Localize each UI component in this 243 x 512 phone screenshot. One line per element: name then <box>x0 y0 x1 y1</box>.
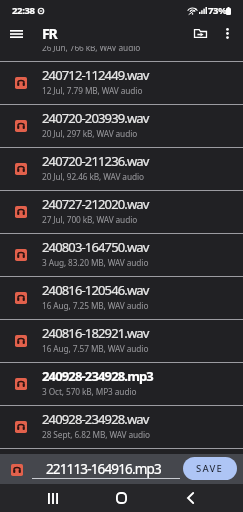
button[interactable]: Recent apps <box>39 484 67 512</box>
staticText: 16 Aug, 7.57 MB, WAV audio <box>42 343 149 354</box>
button[interactable]: 240928-234928.mp3 <box>0 363 243 406</box>
button[interactable]: 240720-203939.wav <box>0 105 243 148</box>
button[interactable]: Home <box>107 484 135 512</box>
staticText: 240928-234928.wav <box>42 410 149 428</box>
button[interactable]: Navigation menu <box>4 21 29 46</box>
staticText: 240727-212020.wav <box>42 195 149 213</box>
staticText: 221113-164916.mp3 <box>46 460 161 478</box>
staticText: FR <box>42 24 57 43</box>
staticText: 2409xx-xxxxxx.wav <box>42 23 145 41</box>
staticText: 20 Jul, 92.46 kB, WAV audio <box>42 171 144 182</box>
staticText: 240720-211236.wav <box>42 152 149 170</box>
button[interactable]: 240928-234928.wav <box>0 406 243 449</box>
staticText: 27 Jul, 700 kB, WAV audio <box>42 214 138 225</box>
staticText: 240712-112449.wav <box>42 66 149 84</box>
staticText: 3 Aug, 83.20 MB, WAV audio <box>42 257 149 268</box>
staticText: 16 Aug, 7.25 MB, WAV audio <box>42 300 149 311</box>
button[interactable]: 240816-182921.wav <box>0 320 243 363</box>
button[interactable]: 240727-212020.wav <box>0 191 243 234</box>
button[interactable]: SAVE <box>183 457 237 480</box>
staticText: 22:38 <box>12 4 35 17</box>
button[interactable]: Move to folder <box>188 21 213 46</box>
staticText: 240816-120546.wav <box>42 281 149 299</box>
staticText: 240928-234928.mp3 <box>42 367 153 385</box>
button[interactable]: Back <box>176 484 204 512</box>
button[interactable]: 240803-164750.wav <box>0 234 243 277</box>
button[interactable]: 2409xx-xxxxxx.wav <box>0 19 243 62</box>
button[interactable]: More options <box>215 21 240 46</box>
staticText: 240816-182921.wav <box>42 324 149 342</box>
staticText: 28 Sept, 6.82 MB, WAV audio <box>42 429 151 440</box>
staticText: SAVE <box>196 462 224 475</box>
staticText: 240803-164750.wav <box>42 238 149 256</box>
button[interactable]: 240712-112449.wav <box>0 62 243 105</box>
staticText: 20 Jul, 297 kB, WAV audio <box>42 128 138 139</box>
staticText: 240720-203939.wav <box>42 109 149 127</box>
staticText: 26 Jun, 766 kB, WAV audio <box>42 42 141 53</box>
staticText: 73% <box>208 4 227 17</box>
staticText: 3 Oct, 570 kB, MP3 audio <box>42 386 137 397</box>
button[interactable]: File name <box>32 457 180 483</box>
button[interactable]: 240720-211236.wav <box>0 148 243 191</box>
staticText: 12 Jul, 7.79 MB, WAV audio <box>42 85 143 96</box>
button[interactable]: 240816-120546.wav <box>0 277 243 320</box>
